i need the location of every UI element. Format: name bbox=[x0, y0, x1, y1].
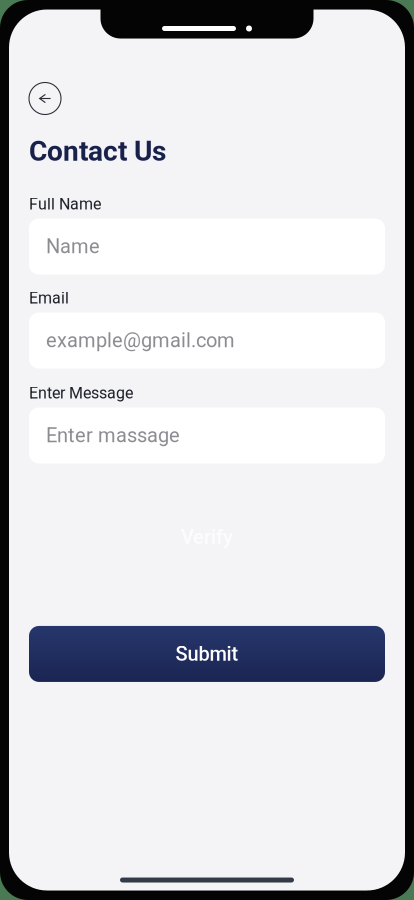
staticText: Contact Us bbox=[29, 135, 166, 167]
staticText: Full Name bbox=[29, 195, 101, 214]
button[interactable]: Submit bbox=[29, 626, 385, 682]
staticText: Email bbox=[29, 289, 69, 308]
staticText: Name bbox=[46, 235, 100, 258]
staticText: Verify bbox=[181, 525, 233, 549]
button[interactable]: Back bbox=[29, 82, 61, 114]
staticText: Submit bbox=[175, 642, 238, 666]
staticText: Enter massage bbox=[46, 424, 180, 447]
staticText: example@gmail.com bbox=[46, 329, 235, 352]
staticText: Enter Message bbox=[29, 384, 133, 403]
